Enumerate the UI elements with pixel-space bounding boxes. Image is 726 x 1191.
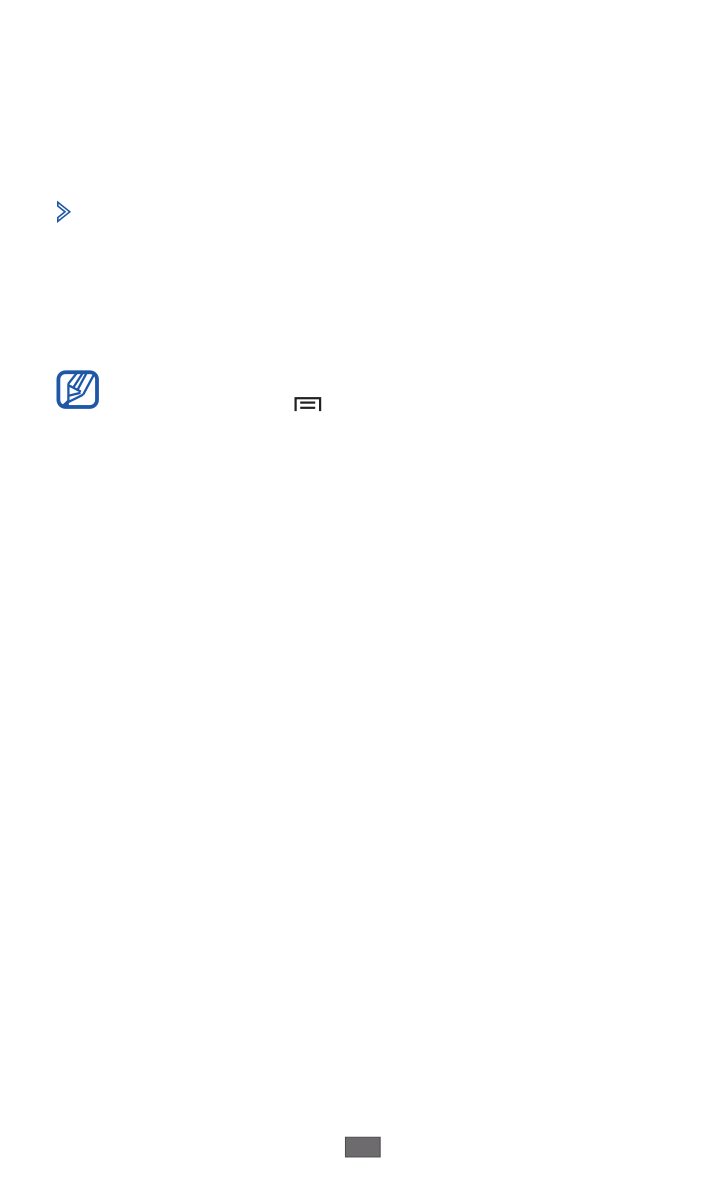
button[interactable]: Memo: [56, 370, 99, 409]
button[interactable]: Options: [293, 396, 322, 413]
button[interactable]: Next: [57, 201, 71, 223]
